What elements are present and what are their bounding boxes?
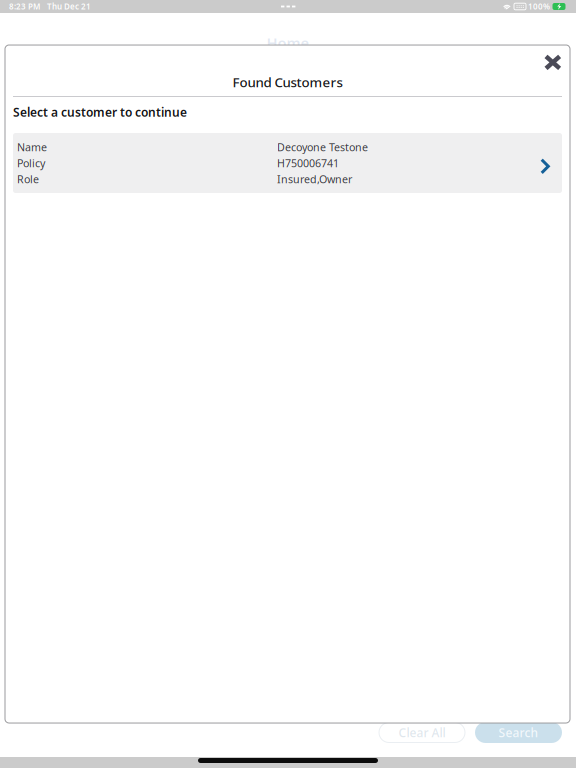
staticText: 100% [528, 1, 550, 12]
button[interactable]: Search [475, 722, 562, 743]
staticText: Clear All [398, 724, 445, 740]
staticText: Select a customer to continue [13, 104, 187, 120]
staticText: Home [266, 33, 309, 52]
button[interactable]: Name [13, 133, 562, 193]
staticText: Decoyone Testone [277, 140, 368, 154]
staticText: Found Customers [232, 73, 342, 91]
staticText: H750006741 [277, 156, 339, 170]
staticText: Policy [17, 156, 45, 170]
staticText: 8:23 PM [9, 1, 40, 12]
staticText: Search [498, 724, 538, 740]
staticText: Role [17, 172, 39, 186]
staticText: Name [17, 140, 47, 154]
staticText: Insured,Owner [277, 172, 352, 186]
button[interactable]: Clear All [379, 722, 465, 742]
staticText: Thu Dec 21 [47, 1, 91, 12]
button[interactable]: Close [538, 48, 568, 77]
